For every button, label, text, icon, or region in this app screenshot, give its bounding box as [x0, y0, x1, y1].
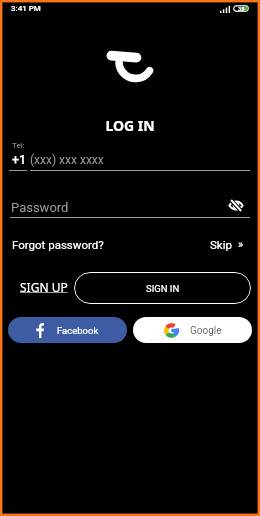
staticText: Skip [210, 238, 232, 251]
button[interactable]: Google [133, 317, 252, 343]
staticText: Password [11, 200, 69, 215]
staticText: LOG IN [0, 116, 260, 135]
staticText: +1 [12, 152, 27, 167]
staticText: Facebook [57, 325, 99, 336]
staticText: Google [190, 325, 222, 337]
staticText: 3:41 PM [11, 4, 41, 13]
button[interactable]: Forgot password? [12, 238, 104, 251]
button[interactable]: SIGN UP [20, 279, 68, 295]
button[interactable]: Facebook [8, 317, 127, 343]
button[interactable]: SIGN IN [74, 272, 251, 304]
button[interactable]: Skip [210, 238, 244, 251]
staticText: SIGN IN [146, 283, 180, 294]
staticText: Tel: [12, 141, 25, 150]
staticText: » [238, 238, 244, 251]
staticText: (xxx) xxx xxxx [30, 153, 104, 167]
button[interactable]: Show password [227, 196, 244, 215]
staticText: 38 [238, 6, 245, 12]
